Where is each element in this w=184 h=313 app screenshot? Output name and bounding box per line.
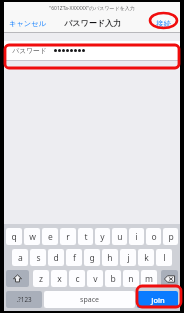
button[interactable]: r xyxy=(60,228,76,245)
staticText: w xyxy=(29,231,36,243)
staticText: e xyxy=(48,231,53,243)
staticText: .?123 xyxy=(16,295,32,304)
button[interactable]: p xyxy=(163,228,178,245)
staticText: n xyxy=(128,273,134,285)
staticText: l xyxy=(163,252,166,264)
button[interactable]: c xyxy=(69,270,85,287)
staticText: i xyxy=(135,231,138,243)
staticText: Join xyxy=(151,295,165,305)
staticText: b xyxy=(110,273,116,285)
button[interactable]: f xyxy=(66,249,82,266)
button[interactable]: u xyxy=(112,228,127,245)
button[interactable]: space xyxy=(44,291,135,308)
staticText: k xyxy=(144,252,149,264)
button[interactable]: o xyxy=(146,228,161,245)
button[interactable]: i xyxy=(129,228,144,245)
staticText: space xyxy=(80,295,99,305)
button[interactable]: y xyxy=(95,228,110,245)
staticText: パスワード xyxy=(12,46,47,55)
button[interactable]: e xyxy=(42,228,58,245)
staticText: t xyxy=(84,231,88,243)
staticText: r xyxy=(66,231,70,243)
staticText: p xyxy=(168,231,174,243)
button[interactable]: z xyxy=(33,270,49,287)
button[interactable]: h xyxy=(102,249,118,266)
button[interactable]: Shift xyxy=(6,270,29,287)
staticText: y xyxy=(100,231,105,243)
button[interactable]: .?123 xyxy=(6,291,42,308)
staticText: 接続 xyxy=(156,19,171,28)
staticText: o xyxy=(151,231,157,243)
button[interactable]: v xyxy=(87,270,103,287)
staticText: j xyxy=(127,252,130,264)
button[interactable]: キャンセル xyxy=(9,19,46,28)
staticText: v xyxy=(93,273,98,285)
staticText: a xyxy=(18,252,23,264)
button[interactable]: b xyxy=(105,270,121,287)
staticText: キャンセル xyxy=(9,19,46,28)
button[interactable]: m xyxy=(141,270,157,287)
staticText: z xyxy=(39,273,43,285)
button[interactable]: s xyxy=(30,249,46,266)
button[interactable]: Backspace xyxy=(161,270,178,287)
button[interactable]: l xyxy=(156,249,172,266)
button[interactable]: g xyxy=(84,249,100,266)
button[interactable]: 接続 xyxy=(156,19,171,28)
button[interactable]: Join xyxy=(137,291,178,308)
staticText: d xyxy=(53,252,59,264)
staticText: c xyxy=(75,273,80,285)
staticText: x xyxy=(57,273,62,285)
button[interactable]: a xyxy=(12,249,28,266)
button[interactable]: パスワード xyxy=(4,41,180,60)
staticText: u xyxy=(117,231,123,243)
button[interactable]: k xyxy=(138,249,154,266)
button[interactable]: d xyxy=(48,249,64,266)
staticText: g xyxy=(89,252,95,264)
button[interactable]: q xyxy=(6,228,22,245)
staticText: h xyxy=(107,252,113,264)
staticText: q xyxy=(11,231,17,243)
staticText: パスワード入力 xyxy=(64,18,121,28)
button[interactable]: j xyxy=(120,249,136,266)
staticText: f xyxy=(73,252,76,264)
button[interactable]: x xyxy=(51,270,67,287)
staticText: s xyxy=(36,252,41,264)
button[interactable]: t xyxy=(78,228,93,245)
staticText: "601ZTa-XXXXXX"のパスワードを入力 xyxy=(49,5,135,12)
staticText: m xyxy=(145,273,153,285)
button[interactable]: w xyxy=(24,228,40,245)
button[interactable]: n xyxy=(123,270,139,287)
